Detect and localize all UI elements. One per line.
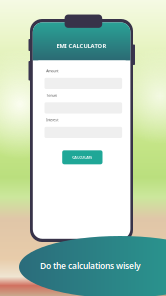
staticText: EMI CALCULATOR (57, 42, 107, 50)
button[interactable]: CALCULATE (62, 150, 102, 164)
staticText: Interest (46, 118, 58, 122)
staticText: Tenure (46, 93, 57, 98)
staticText: Amount (46, 69, 58, 73)
staticText: CALCULATE (72, 155, 92, 160)
staticText: Do the calculations wisely (40, 260, 141, 271)
